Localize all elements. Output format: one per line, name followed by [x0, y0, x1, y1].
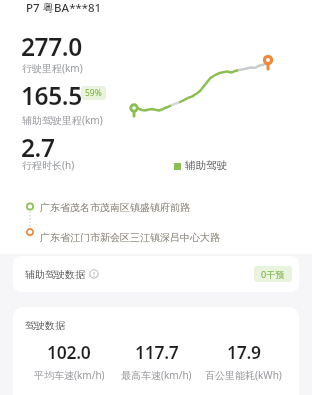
staticText: 广东省茂名市茂南区镇盛镇府前路: [40, 201, 190, 214]
staticText: 驾驶数据: [25, 319, 65, 332]
staticText: 277.0: [21, 30, 82, 63]
staticText: 辅助驾驶里程(km): [22, 113, 103, 127]
staticText: 百公里能耗(kWh): [205, 368, 282, 382]
staticText: 最高车速(km/h): [121, 368, 192, 382]
staticText: 0干预: [261, 268, 285, 280]
staticText: 行程时长(h): [22, 158, 75, 172]
staticText: 17.9: [227, 340, 261, 364]
staticText: 辅助驾驶数据: [25, 268, 85, 281]
staticText: 辅助驾驶: [185, 159, 227, 172]
staticText: 59%: [85, 87, 102, 99]
staticText: 行驶里程(km): [22, 61, 83, 75]
staticText: 2.7: [21, 131, 55, 164]
button[interactable]: 辅助驾驶数据: [13, 256, 299, 292]
staticText: 平均车速(km/h): [34, 368, 105, 382]
staticText: P7 粤BA***81: [26, 0, 102, 16]
staticText: 117.7: [135, 340, 179, 364]
staticText: 165.5: [21, 79, 82, 112]
staticText: 102.0: [47, 340, 91, 364]
staticText: 广东省江门市新会区三江镇深吕中心大路: [40, 231, 220, 244]
